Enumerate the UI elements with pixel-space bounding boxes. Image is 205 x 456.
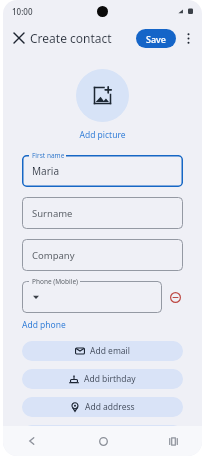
button[interactable]: Add address <box>22 397 183 417</box>
staticText: Save <box>146 33 167 45</box>
staticText: First name <box>32 151 65 160</box>
button[interactable]: Close <box>8 27 30 49</box>
button[interactable]: Add email <box>22 341 183 361</box>
button[interactable]: Save <box>136 29 176 48</box>
button[interactable]: Add picture <box>76 69 129 122</box>
staticText: Add phone <box>22 319 66 331</box>
staticText: Add picture <box>79 129 126 141</box>
button[interactable]: Company <box>22 239 183 271</box>
staticText: Company <box>32 249 75 262</box>
staticText: Surname <box>32 207 73 220</box>
button[interactable]: Add birthday <box>22 369 183 389</box>
staticText: Add birthday <box>84 373 136 385</box>
staticText: Maria <box>32 164 59 178</box>
button[interactable]: Remove phone <box>167 289 183 305</box>
button[interactable]: Recents <box>163 431 183 451</box>
staticText: 10:00 <box>12 6 33 17</box>
staticText: Add address <box>85 401 135 413</box>
button[interactable]: Maria <box>22 155 183 187</box>
button[interactable]: More options <box>178 28 198 48</box>
button[interactable]: Add more fields <box>22 425 183 445</box>
button[interactable]: Back <box>22 431 42 451</box>
button[interactable]: Surname <box>22 197 183 229</box>
button[interactable]: Phone type <box>30 291 42 303</box>
staticText: Add email <box>90 345 130 357</box>
button[interactable]: Home <box>93 431 113 451</box>
staticText: Phone (Mobile) <box>32 277 79 286</box>
staticText: Create contact <box>30 30 112 46</box>
button[interactable]: Add phone <box>22 318 66 332</box>
button[interactable]: Phone type <box>22 281 162 313</box>
